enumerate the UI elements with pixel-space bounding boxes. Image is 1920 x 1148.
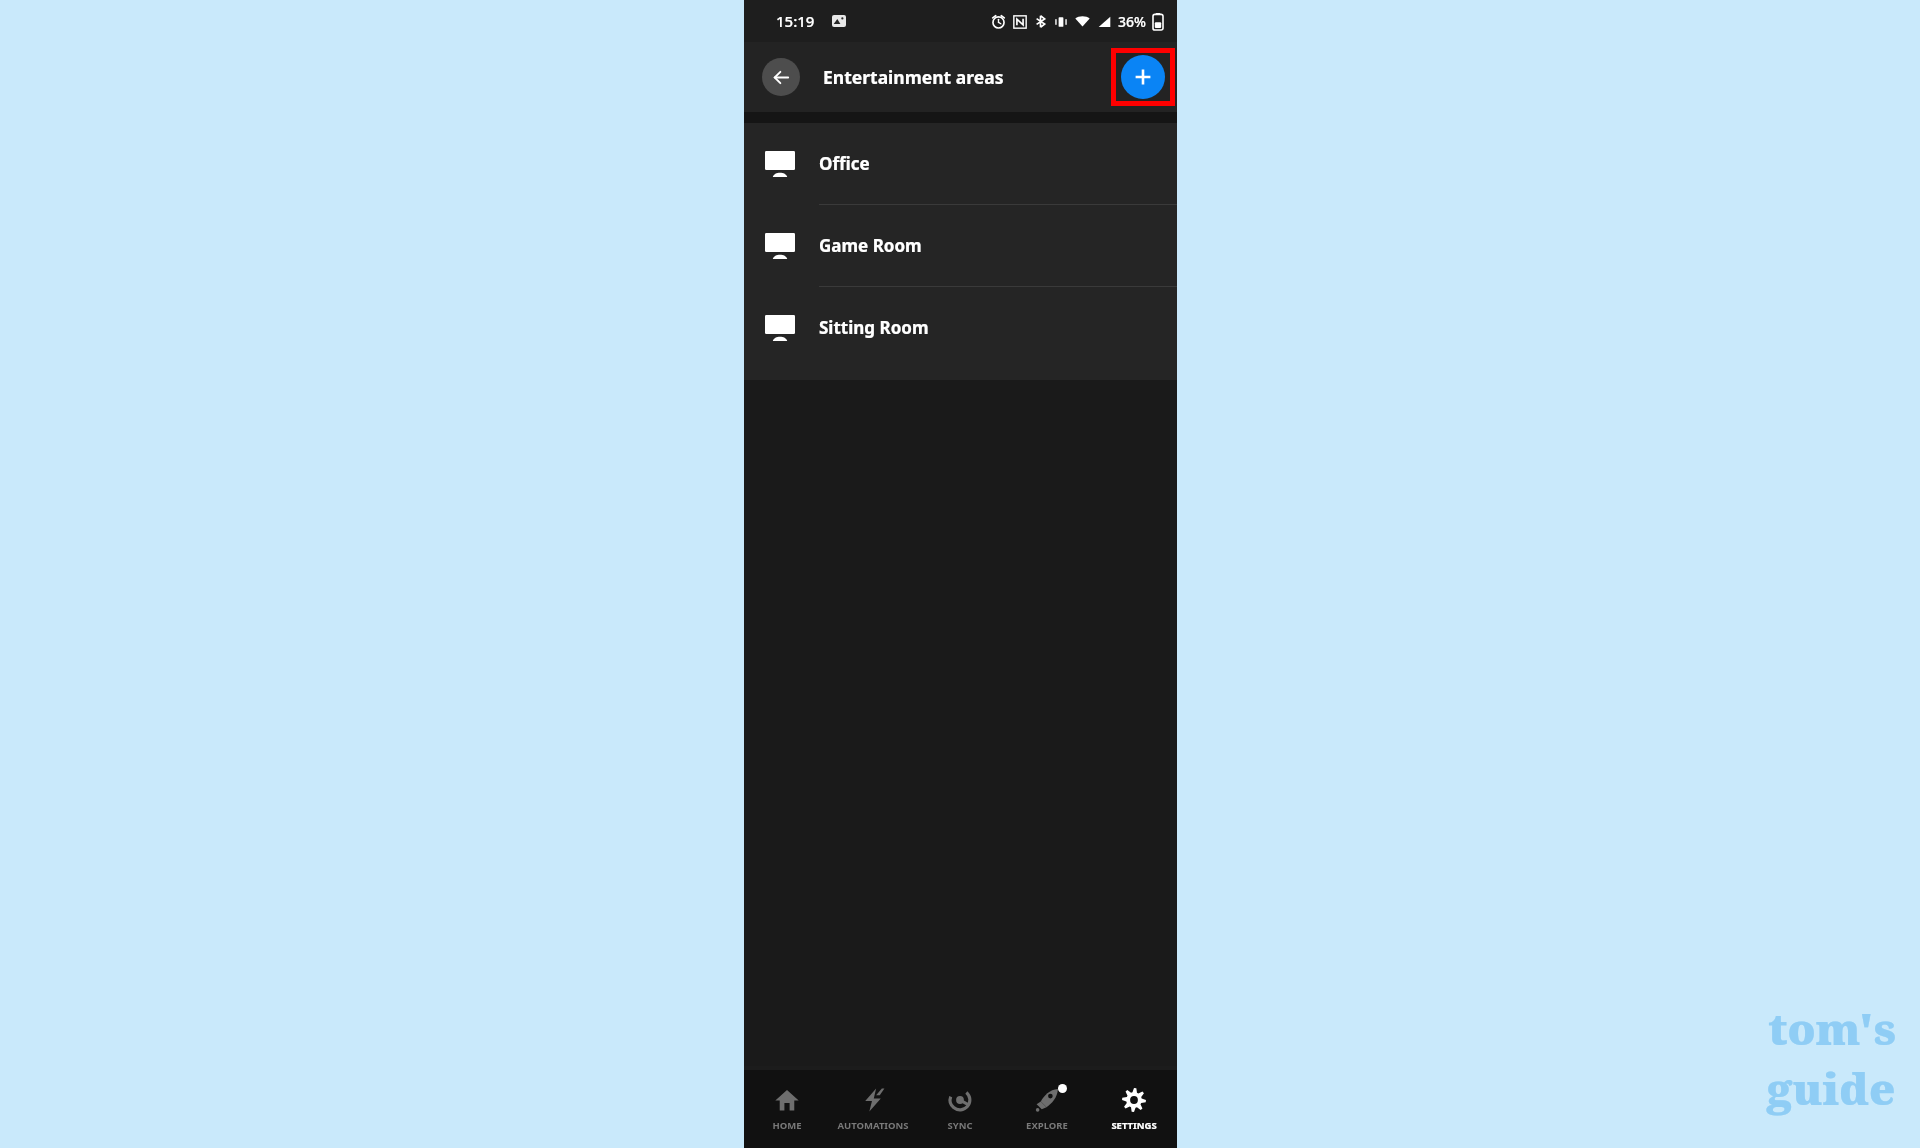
button[interactable]: Sitting Room [744,287,1177,368]
button[interactable]: Back [762,58,800,96]
button[interactable]: EXPLORE [1003,1070,1090,1148]
staticText: AUTOMATIONS [837,1119,909,1132]
staticText: SETTINGS [1111,1119,1157,1132]
staticText: EXPLORE [1026,1119,1068,1132]
button[interactable]: AUTOMATIONS [830,1070,916,1148]
staticText: Entertainment areas [823,65,1004,89]
button[interactable]: HOME [744,1070,830,1148]
staticText: 36% [1118,12,1146,31]
staticText: SYNC [947,1119,973,1132]
staticText: HOME [772,1119,802,1132]
button[interactable]: SYNC [916,1070,1003,1148]
button[interactable]: SETTINGS [1090,1070,1177,1148]
staticText: guide [1767,1058,1896,1118]
staticText: tom's [1768,998,1896,1058]
button[interactable]: Add entertainment area [1121,55,1165,99]
button[interactable]: Game Room [744,205,1177,287]
staticText: Office [819,152,870,175]
staticText: 15:19 [776,11,815,31]
button[interactable]: Office [744,123,1177,205]
staticText: Game Room [819,234,922,257]
staticText: Sitting Room [819,316,929,339]
